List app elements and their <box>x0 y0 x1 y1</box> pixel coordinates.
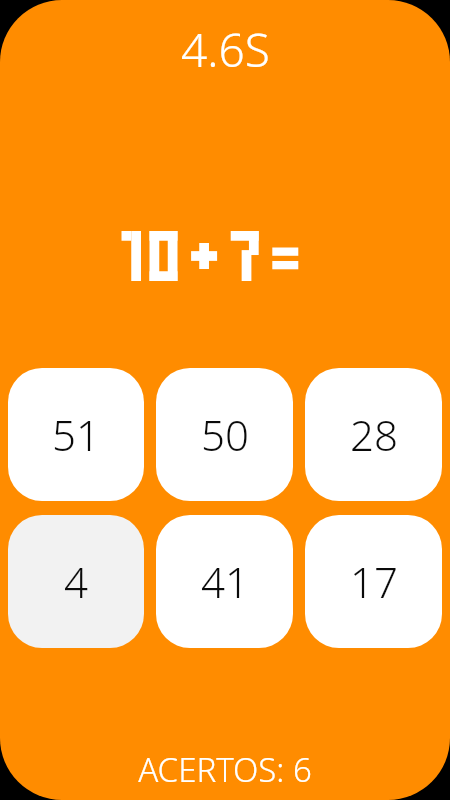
staticText: 4.6S <box>181 18 270 81</box>
staticText: 28 <box>350 406 398 463</box>
button[interactable]: 51 <box>8 368 144 501</box>
button[interactable]: 4 <box>8 515 144 648</box>
staticText: 51 <box>52 406 100 463</box>
staticText: 41 <box>201 553 249 610</box>
button[interactable]: 28 <box>305 368 442 501</box>
button[interactable]: 41 <box>156 515 293 648</box>
button[interactable]: 17 <box>305 515 442 648</box>
staticText: ACERTOS: 6 <box>138 747 312 792</box>
other: 10 plus 7 equals <box>113 231 337 281</box>
staticText: 17 <box>350 553 398 610</box>
button[interactable]: 50 <box>156 368 293 501</box>
staticText: 4 <box>64 553 88 610</box>
staticText: 50 <box>201 406 249 463</box>
